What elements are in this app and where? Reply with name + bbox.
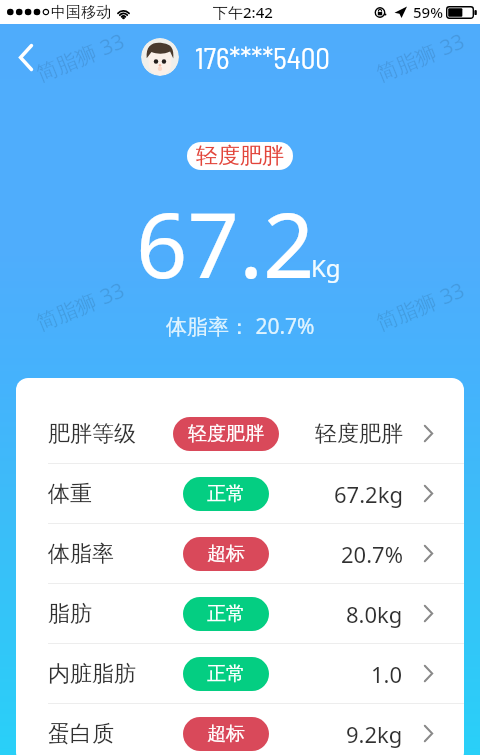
button[interactable]: Back: [6, 37, 46, 77]
staticText: 67.2kg: [334, 479, 403, 509]
staticText: 轻度肥胖: [315, 420, 403, 448]
button[interactable]: 内脏脂肪: [16, 644, 464, 703]
staticText: 中国移动: [51, 3, 111, 22]
staticText: 简脂狮 33: [32, 524, 129, 586]
staticText: 简脂狮 33: [32, 26, 129, 88]
button[interactable]: 肥胖等级: [16, 404, 464, 463]
button[interactable]: 体脂率: [16, 524, 464, 583]
staticText: 简脂狮 33: [372, 275, 469, 337]
staticText: 正常: [207, 662, 245, 686]
staticText: 简脂狮 33: [372, 524, 469, 586]
staticText: 59%: [413, 2, 443, 22]
button[interactable]: 轻度肥胖: [187, 142, 293, 170]
button[interactable]: 脂肪: [16, 584, 464, 643]
staticText: 蛋白质: [48, 720, 114, 748]
staticText: 9.2kg: [346, 719, 403, 749]
staticText: 轻度肥胖: [196, 142, 284, 170]
staticText: 下午2:42: [213, 2, 273, 22]
staticText: 内脏脂肪: [48, 660, 136, 688]
button[interactable]: 体重: [16, 464, 464, 523]
staticText: 体脂率： 20.7%: [166, 312, 315, 341]
staticText: 正常: [207, 602, 245, 626]
staticText: 体重: [48, 480, 92, 508]
staticText: 1.0: [371, 659, 403, 689]
staticText: 超标: [207, 722, 245, 746]
staticText: 脂肪: [48, 600, 92, 628]
staticText: 20.7%: [341, 539, 403, 569]
staticText: 176****5400: [195, 40, 330, 75]
staticText: 8.0kg: [346, 599, 403, 629]
staticText: 正常: [207, 482, 245, 506]
button[interactable]: 蛋白质: [16, 704, 464, 755]
staticText: 简脂狮 33: [372, 26, 469, 88]
staticText: 67.2: [136, 182, 315, 305]
staticText: 肥胖等级: [48, 420, 136, 448]
staticText: 轻度肥胖: [188, 422, 264, 446]
staticText: Kg: [311, 251, 341, 284]
staticText: 超标: [207, 542, 245, 566]
staticText: 体脂率: [48, 540, 114, 568]
staticText: 简脂狮 33: [32, 275, 129, 337]
